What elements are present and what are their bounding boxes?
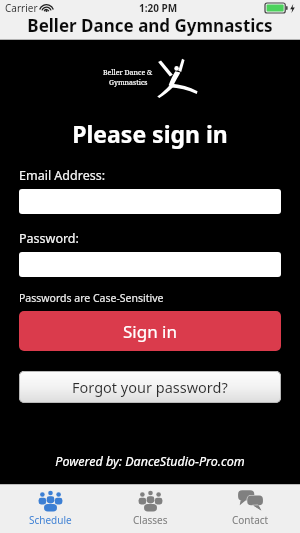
staticText: Sign in xyxy=(123,320,177,343)
button[interactable] xyxy=(19,189,281,214)
staticText: Gymnastics xyxy=(109,78,148,88)
staticText: Powered by: DanceStudio-Pro.com xyxy=(0,453,300,470)
staticText: Classes xyxy=(133,513,168,527)
staticText: Contact xyxy=(232,513,269,527)
button[interactable]: Classes xyxy=(100,484,200,533)
staticText: Schedule xyxy=(29,513,72,527)
staticText: Beller Dance & xyxy=(103,68,153,78)
button[interactable]: Schedule xyxy=(0,484,100,533)
staticText: Forgot your password? xyxy=(72,377,228,397)
staticText: Password: xyxy=(19,230,79,247)
staticText: Carrier xyxy=(5,1,38,15)
button[interactable]: Contact xyxy=(200,484,300,533)
staticText: Passwords are Case-Sensitive xyxy=(19,291,164,305)
staticText: Email Address: xyxy=(19,167,106,184)
button[interactable]: Forgot your password? xyxy=(19,371,281,403)
staticText: Beller Dance and Gymnastics xyxy=(0,14,300,37)
button[interactable] xyxy=(19,252,281,277)
button[interactable]: Sign in xyxy=(19,311,281,351)
staticText: Please sign in xyxy=(0,118,300,149)
staticText: 1:20 PM xyxy=(139,1,178,15)
